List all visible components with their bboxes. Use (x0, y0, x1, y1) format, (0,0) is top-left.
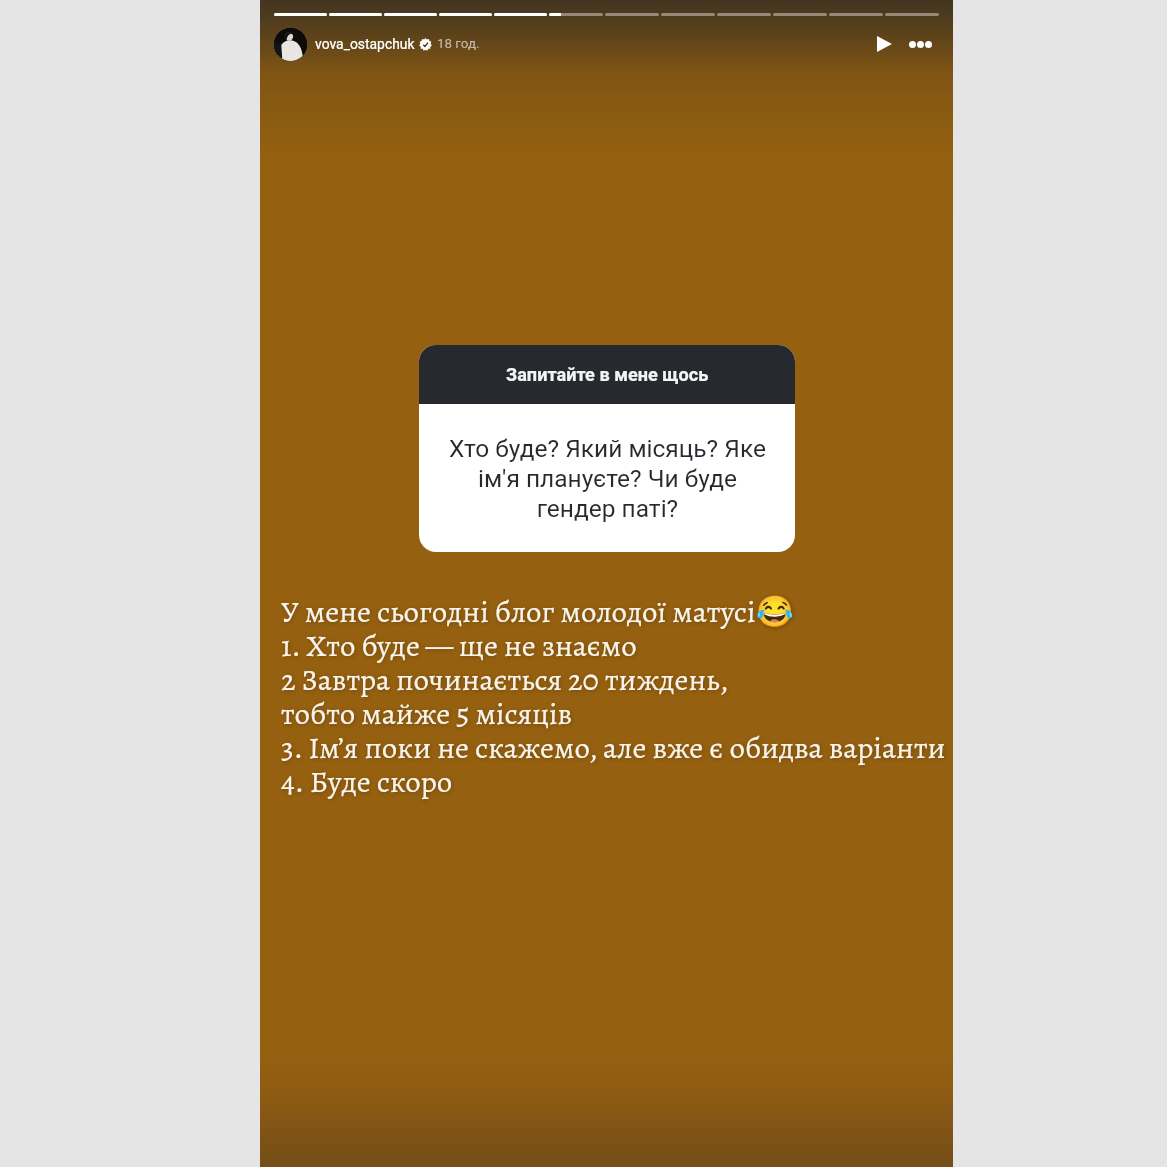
staticText: 18 год. (437, 36, 480, 52)
button[interactable]: Play (867, 27, 901, 61)
button[interactable]: vova_ostapchuk (315, 36, 415, 52)
button[interactable]: Запитайте в мене щось (419, 345, 795, 552)
staticText: У мене сьогодні блог молодої матусі😂 1. … (281, 591, 946, 803)
staticText: Хто буде? Який місяць? Яке ім'я плануєте… (449, 434, 766, 523)
staticText: Запитайте в мене щось (506, 364, 709, 385)
button[interactable]: Profile photo vova_ostapchuk (274, 28, 307, 61)
button[interactable]: More options (902, 27, 939, 61)
